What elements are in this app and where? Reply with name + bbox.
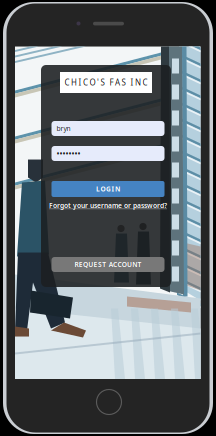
staticText: bryn [56,124,70,133]
staticText: LOGIN [96,185,120,193]
staticText: REQUEST ACCOUNT [74,260,142,269]
button[interactable]: LOGIN [51,181,164,197]
staticText: CHICO'S FAS INC [64,77,147,88]
staticText: Forgot your username or password? [49,201,167,210]
button[interactable]: REQUEST ACCOUNT [51,257,164,272]
staticText: •••••••• [56,148,80,159]
button[interactable]: Forgot your username or password? [47,201,168,210]
